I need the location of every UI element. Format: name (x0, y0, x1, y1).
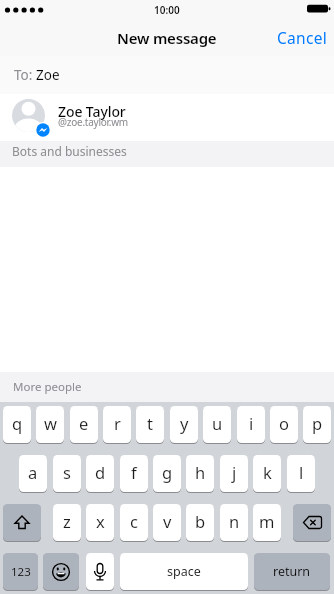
staticText: c (130, 510, 138, 532)
button[interactable]: m (253, 504, 281, 541)
staticText: i (249, 412, 254, 434)
staticText: g (162, 461, 173, 483)
button[interactable]: 123 (3, 553, 38, 590)
button[interactable]: y (170, 406, 198, 443)
button[interactable]: u (203, 406, 231, 443)
staticText: To: (14, 66, 33, 84)
staticText: m (259, 510, 275, 532)
button[interactable]: q (3, 406, 31, 443)
button[interactable]: d (86, 455, 114, 492)
staticText: Zoe (36, 66, 60, 84)
button[interactable]: t (136, 406, 164, 443)
staticText: q (12, 412, 23, 434)
button[interactable]: l (287, 455, 315, 492)
button[interactable]: r (103, 406, 131, 443)
staticText: 10:00 (154, 3, 180, 17)
button[interactable]: More people (0, 372, 334, 402)
staticText: o (279, 412, 289, 434)
button[interactable]: To: (0, 56, 334, 94)
staticText: u (212, 412, 223, 434)
staticText: a (28, 461, 38, 483)
staticText: Zoe Taylor (58, 102, 126, 121)
button[interactable]: z (53, 504, 81, 541)
button[interactable]: space (120, 553, 248, 590)
button[interactable]: p (303, 406, 331, 443)
staticText: p (312, 412, 323, 434)
staticText: f (131, 461, 137, 483)
staticText: y (180, 412, 189, 434)
staticText: e (79, 412, 89, 434)
button[interactable]: i (237, 406, 265, 443)
staticText: t (147, 412, 153, 434)
button[interactable]: v (153, 504, 181, 541)
staticText: j (232, 461, 237, 483)
button[interactable]: o (270, 406, 298, 443)
staticText: New message (117, 28, 217, 48)
button[interactable]: j (220, 455, 248, 492)
staticText: h (195, 461, 206, 483)
staticText: x (96, 510, 105, 532)
staticText: @zoe.taylor.wm (58, 115, 128, 129)
button[interactable]: k (253, 455, 281, 492)
button[interactable]: w (36, 406, 64, 443)
staticText: Bots and businesses (12, 143, 127, 159)
button[interactable]: a (19, 455, 47, 492)
button[interactable]: g (153, 455, 181, 492)
staticText: l (299, 461, 304, 483)
button[interactable] (0, 94, 334, 141)
staticText: b (195, 510, 206, 532)
button[interactable]: e (70, 406, 98, 443)
button[interactable]: c (120, 504, 148, 541)
button[interactable]: s (53, 455, 81, 492)
staticText: More people (13, 379, 82, 395)
button[interactable] (293, 504, 331, 541)
staticText: Cancel (277, 27, 328, 48)
button[interactable]: n (220, 504, 248, 541)
button[interactable] (86, 553, 114, 590)
button[interactable]: b (186, 504, 214, 541)
staticText: n (229, 510, 240, 532)
staticText: w (44, 412, 57, 434)
staticText: d (95, 461, 106, 483)
button[interactable] (43, 553, 79, 590)
staticText: 123 (11, 564, 31, 580)
staticText: k (263, 461, 272, 483)
button[interactable]: f (120, 455, 148, 492)
button[interactable]: h (186, 455, 214, 492)
staticText: return (273, 563, 311, 580)
staticText: space (167, 563, 201, 580)
staticText: s (63, 461, 71, 483)
staticText: v (163, 510, 172, 532)
staticText: r (114, 412, 121, 434)
button[interactable]: x (86, 504, 114, 541)
button[interactable]: Cancel (258, 22, 328, 53)
staticText: z (63, 510, 71, 532)
button[interactable]: return (254, 553, 330, 590)
button[interactable] (3, 504, 41, 541)
